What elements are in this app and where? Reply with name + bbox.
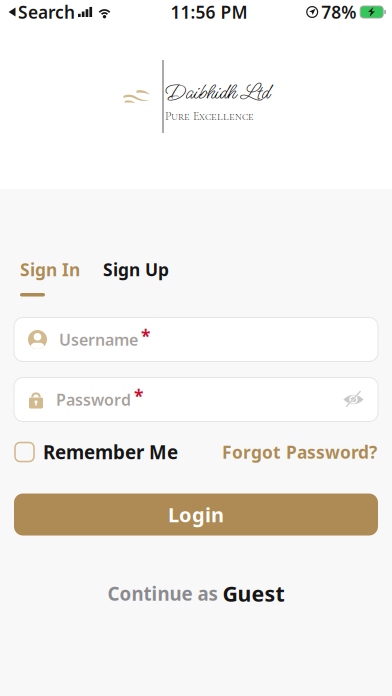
staticText: Forgot Password?	[222, 440, 377, 463]
staticText: Pure Excellence	[165, 109, 254, 123]
staticText: Continue as	[107, 581, 217, 606]
button[interactable]: Sign In	[20, 258, 80, 296]
button[interactable]: Login	[14, 493, 378, 535]
staticText: Login	[168, 501, 224, 528]
staticText: Username	[59, 329, 138, 350]
button[interactable]: Remember Me	[15, 440, 178, 464]
staticText: *	[134, 384, 143, 407]
staticText: Password	[56, 389, 131, 410]
staticText: Remember Me	[43, 440, 178, 464]
staticText: *	[141, 324, 150, 347]
staticText: 11:56 PM	[171, 0, 248, 23]
staticText: Sign In	[20, 258, 80, 281]
button[interactable]: Forgot Password?	[222, 440, 377, 463]
staticText: Search	[18, 0, 75, 23]
button[interactable]: Show password	[334, 382, 373, 417]
button[interactable]: Sign Up	[103, 258, 169, 296]
staticText: Sign Up	[103, 258, 169, 281]
button[interactable]: Continue as	[107, 583, 284, 603]
staticText: 78%	[321, 0, 356, 23]
staticText: Daibhidh Ltd	[165, 78, 270, 108]
staticText: Guest	[222, 579, 284, 608]
